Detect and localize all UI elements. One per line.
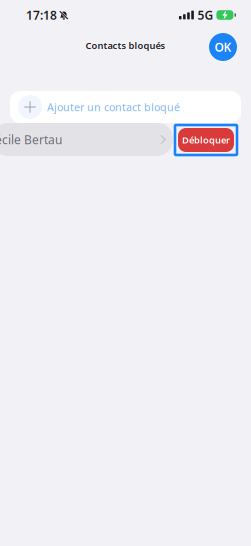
button[interactable]: écile Bertau	[0, 123, 173, 156]
staticText: 5G	[197, 7, 213, 23]
staticText: Ajouter un contact bloqué	[47, 100, 180, 114]
button[interactable]: OK	[209, 33, 237, 61]
staticText: Débloquer	[182, 134, 230, 146]
staticText: écile Bertau	[0, 131, 62, 147]
button[interactable]: Ajouter un contact bloqué	[10, 91, 241, 123]
button[interactable]: Débloquer	[175, 125, 237, 155]
staticText: 17:18	[26, 7, 57, 23]
staticText: OK	[214, 39, 231, 55]
staticText: Contacts bloqués	[85, 39, 165, 52]
